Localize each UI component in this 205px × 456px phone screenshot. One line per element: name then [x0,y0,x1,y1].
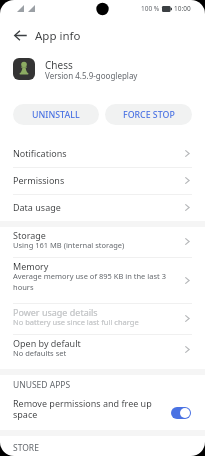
staticText: Remove permissions and free up space [13,397,163,420]
staticText: Chess [45,58,73,72]
button[interactable]: UNINSTALL [13,104,99,125]
button[interactable]: FORCE STOP [105,104,192,125]
staticText: FORCE STOP [123,109,175,121]
staticText: Power usage details [13,306,98,318]
button[interactable] [0,195,205,221]
button[interactable]: Remove permissions toggle [171,407,191,419]
staticText: Data usage [13,201,61,213]
staticText: Permissions [13,174,65,186]
staticText: STORE [13,442,39,454]
staticText: App info [35,28,81,44]
staticText: 10:00 [174,4,191,13]
button[interactable]: Back [8,23,32,47]
button[interactable] [0,392,205,430]
staticText: Memory [13,260,49,272]
staticText: Storage [13,229,46,241]
staticText: UNUSED APPS [13,379,71,391]
button[interactable] [0,168,205,194]
staticText: Notifications [13,147,67,159]
staticText: 100 % [141,4,160,13]
button[interactable] [0,335,205,369]
staticText: Using 161 MB (internal storage) [13,240,125,250]
button[interactable] [0,140,205,167]
button[interactable] [0,258,205,303]
staticText: Version 4.5.9-googleplay [45,70,138,81]
staticText: Average memory use of 895 KB in the last… [13,271,173,292]
button[interactable] [0,227,205,257]
staticText: Open by default [13,337,81,349]
staticText: No defaults set [13,348,67,358]
button[interactable] [0,304,205,334]
staticText: UNINSTALL [32,109,80,121]
staticText: No battery use since last full charge [13,317,139,327]
